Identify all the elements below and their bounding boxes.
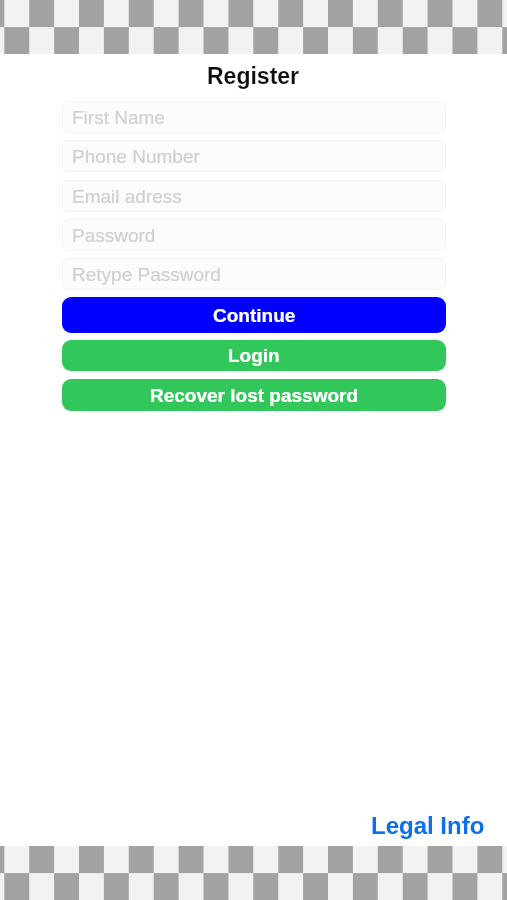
staticText: Continue xyxy=(213,305,296,326)
button[interactable]: Retype Password xyxy=(62,258,446,290)
staticText: Recover lost password xyxy=(150,385,359,406)
staticText: Register xyxy=(207,63,300,89)
staticText: First Name xyxy=(72,107,165,128)
staticText: Password xyxy=(72,225,156,246)
staticText: Legal Info xyxy=(371,812,485,839)
button[interactable]: Legal Info xyxy=(371,812,485,839)
button[interactable]: Email adress xyxy=(62,180,446,212)
button[interactable]: Login xyxy=(62,340,446,371)
button[interactable]: Phone Number xyxy=(62,140,446,172)
button[interactable]: Continue xyxy=(62,297,446,333)
button[interactable]: Recover lost password xyxy=(62,379,446,411)
staticText: Phone Number xyxy=(72,146,200,167)
button[interactable]: First Name xyxy=(62,101,446,133)
button[interactable]: Password xyxy=(62,219,446,251)
staticText: Login xyxy=(228,345,280,366)
staticText: Retype Password xyxy=(72,264,221,285)
staticText: Email adress xyxy=(72,186,182,207)
